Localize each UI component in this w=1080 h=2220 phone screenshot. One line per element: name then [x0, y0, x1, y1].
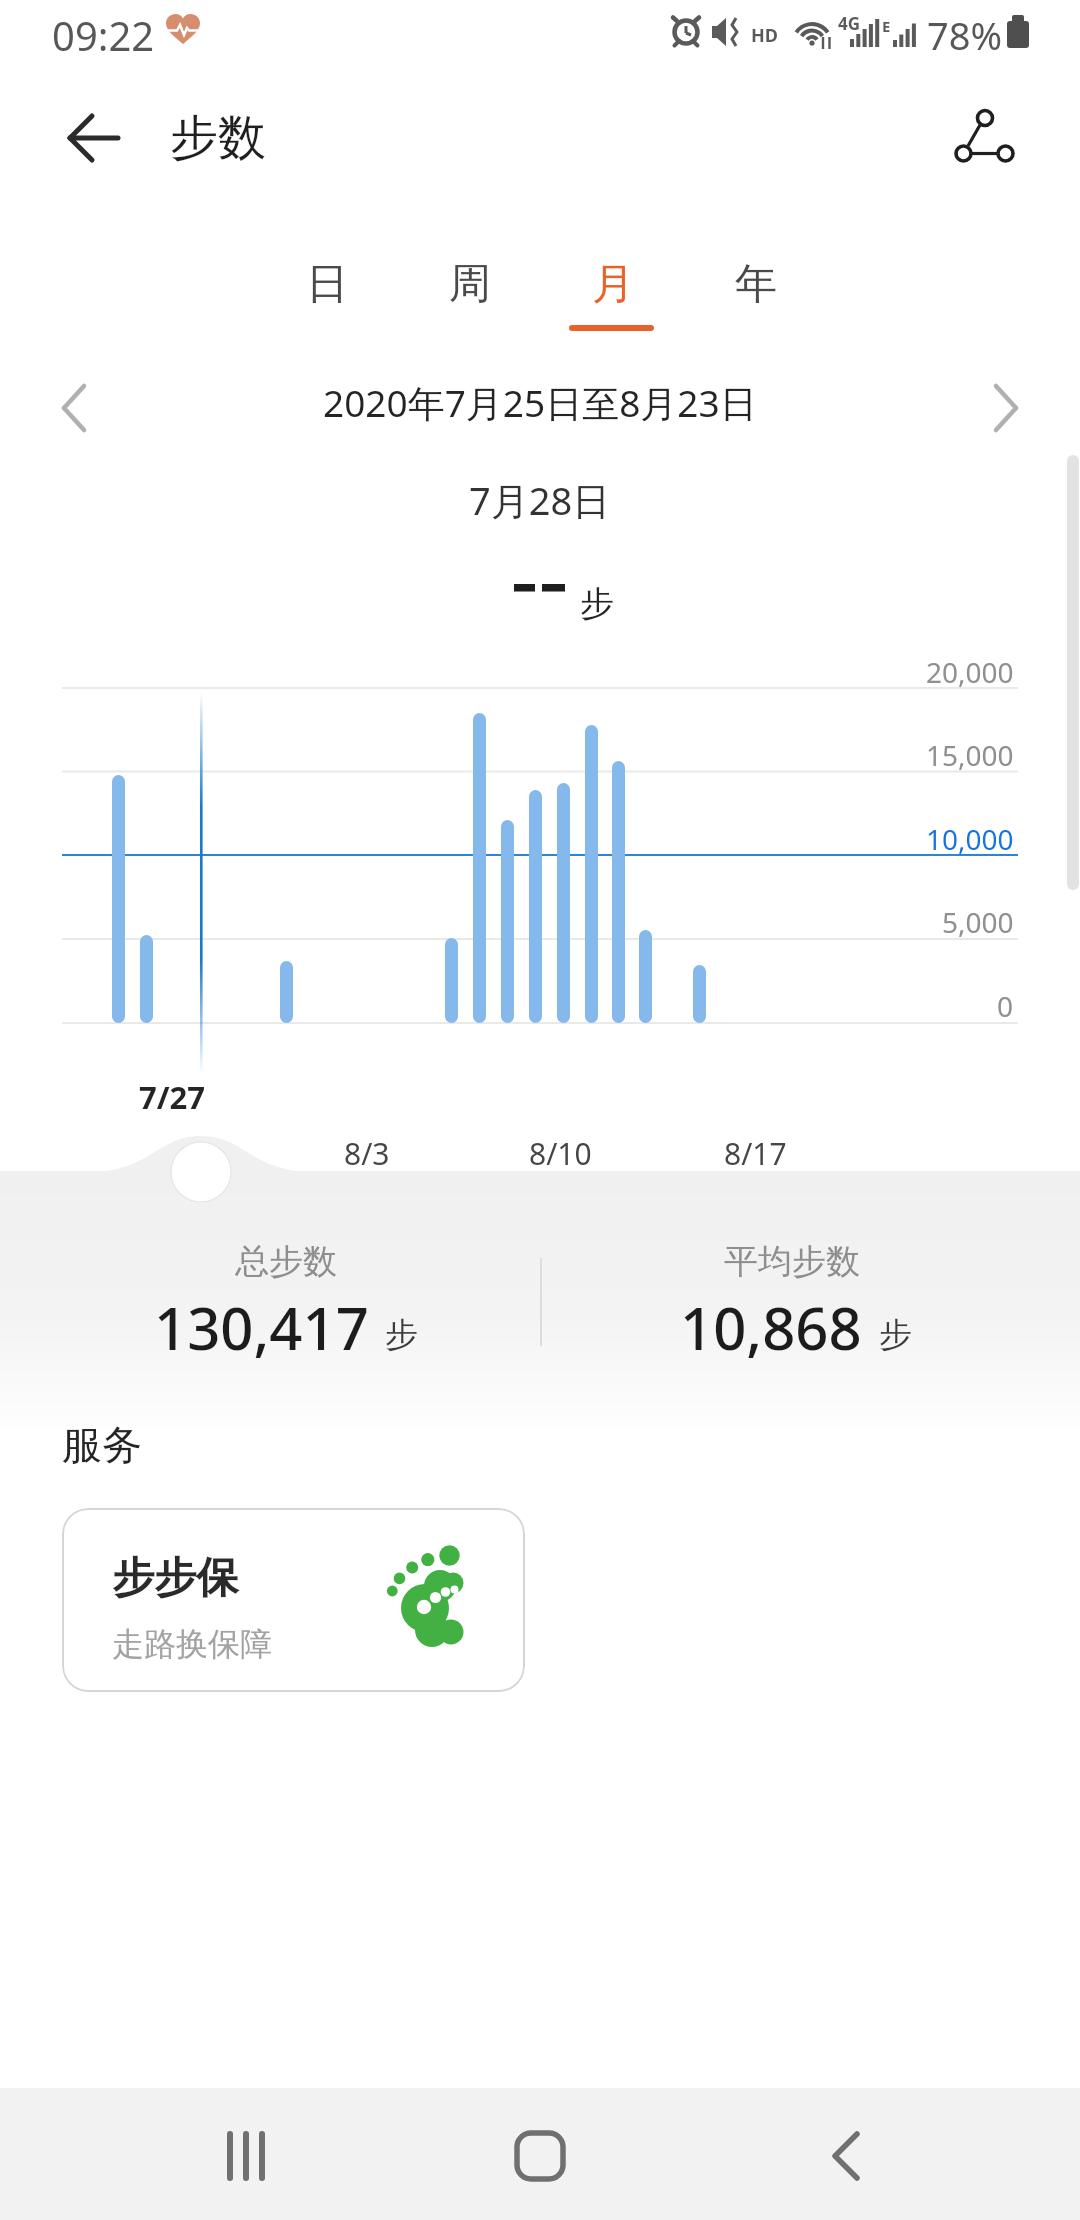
staticText: 步数 — [170, 108, 266, 168]
button[interactable]: 日 — [256, 244, 398, 330]
button[interactable]: 步步保 — [62, 1508, 525, 1692]
button[interactable] — [735, 2088, 935, 2220]
staticText: 总步数 — [235, 1240, 337, 1283]
staticText: 2020年7月25日至8月23日 — [323, 377, 757, 428]
staticText: 15,000 — [926, 736, 1014, 774]
staticText: 0 — [997, 987, 1014, 1025]
staticText: 20,000 — [926, 653, 1014, 691]
staticText: E — [882, 16, 891, 36]
staticText: 步步保 — [112, 1552, 238, 1605]
staticText: 步 — [580, 582, 614, 625]
button[interactable] — [44, 376, 108, 440]
button[interactable] — [171, 1142, 231, 1202]
staticText: 年 — [735, 258, 777, 311]
staticText: HD — [751, 23, 778, 48]
staticText: 走路换保障 — [112, 1624, 272, 1664]
button[interactable] — [145, 2088, 345, 2220]
staticText: 日 — [306, 258, 348, 311]
staticText: 步 — [385, 1314, 418, 1356]
button[interactable]: 年 — [685, 244, 827, 330]
staticText: 130,417 — [154, 1288, 369, 1367]
staticText: 09:22 — [52, 8, 155, 62]
button[interactable]: 周 — [399, 244, 541, 330]
staticText: 8/10 — [529, 1133, 592, 1174]
staticText: 月 — [592, 258, 634, 311]
staticText: 服务 — [62, 1420, 142, 1470]
staticText: 10,868 — [680, 1288, 862, 1367]
staticText: 8/17 — [724, 1133, 787, 1174]
button[interactable] — [938, 92, 1030, 184]
staticText: 8/3 — [344, 1133, 390, 1174]
staticText: 4G — [838, 12, 861, 35]
staticText: 5,000 — [942, 903, 1014, 941]
button[interactable] — [440, 2088, 640, 2220]
staticText: 周 — [449, 258, 491, 311]
button[interactable] — [52, 96, 136, 180]
button[interactable]: 月 — [542, 244, 684, 330]
button[interactable] — [972, 376, 1036, 440]
staticText: 78% — [927, 9, 1003, 61]
staticText: 步 — [879, 1314, 912, 1356]
staticText: 10,000 — [926, 820, 1014, 858]
staticText: 7月28日 — [469, 474, 611, 526]
staticText: 平均步数 — [724, 1240, 860, 1283]
staticText: 7/27 — [139, 1076, 206, 1118]
